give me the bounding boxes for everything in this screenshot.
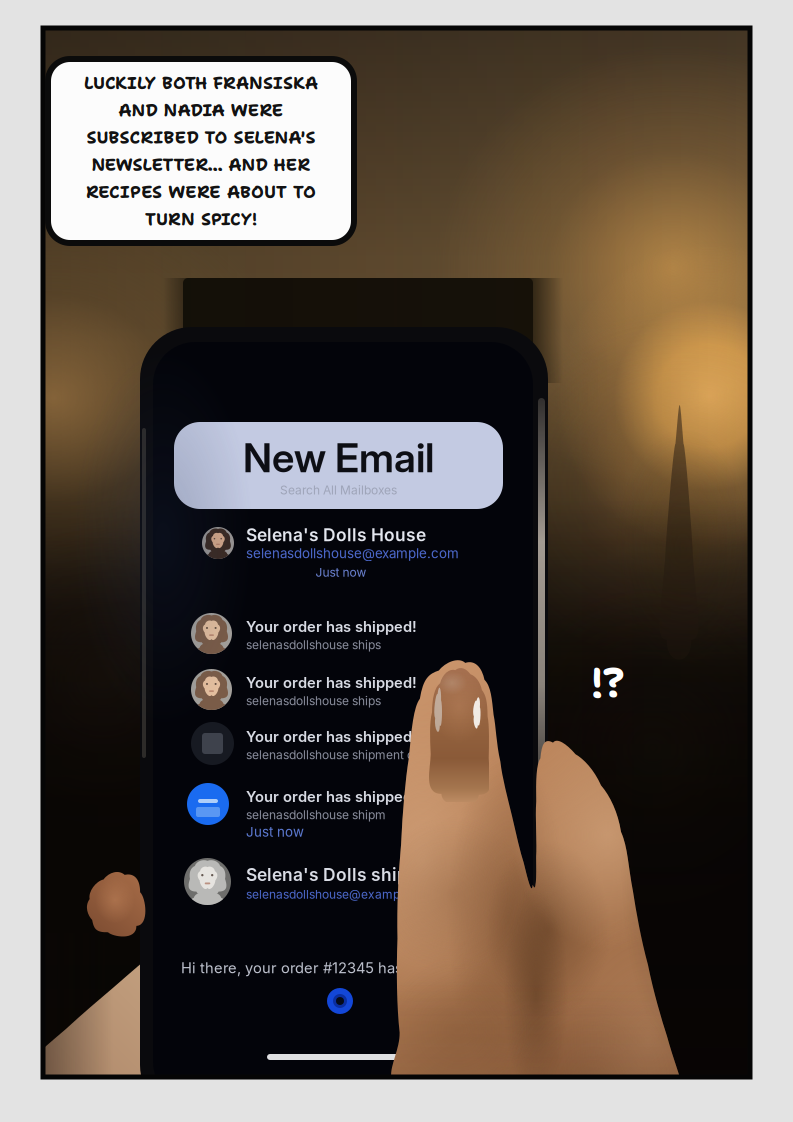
staticText: Your order has shipped! xyxy=(246,788,417,806)
staticText: SUBSCRIBED TO SELENA'S xyxy=(86,126,315,149)
staticText: RECIPES WERE ABOUT TO xyxy=(86,180,316,203)
staticText: NEWSLETTER... AND HER xyxy=(91,153,310,176)
staticText: selenasdollshouse@example.com xyxy=(246,545,459,561)
staticText: selenasdollshouse ships xyxy=(246,694,381,708)
staticText: LUCKILY BOTH FRANSISKA xyxy=(84,71,318,94)
staticText: selenasdollshouse ships xyxy=(246,638,381,652)
staticText: AND NADIA WERE xyxy=(118,98,283,122)
staticText: Search All Mailboxes xyxy=(280,483,397,497)
staticText: Just now xyxy=(246,824,304,840)
staticText: Selena's Dolls House xyxy=(246,524,426,545)
staticText: Your order has shipped! xyxy=(246,728,417,746)
staticText: Selena's Dolls shipped! xyxy=(246,864,446,885)
staticText: Your order has shipped! xyxy=(246,618,417,636)
staticText: selenasdollshouse shipment order xyxy=(246,748,437,762)
staticText: New Email xyxy=(243,433,434,482)
staticText: Your order has shipped! xyxy=(246,674,417,692)
staticText: TURN SPICY! xyxy=(145,207,257,231)
staticText: selenasdollshouse shipm xyxy=(246,808,386,822)
staticText: !? xyxy=(591,655,625,711)
staticText: Just now xyxy=(315,565,366,580)
staticText: selenasdollshouse@example.c xyxy=(246,887,420,902)
staticText: Hi there, your order #12345 has shipp xyxy=(181,959,446,977)
